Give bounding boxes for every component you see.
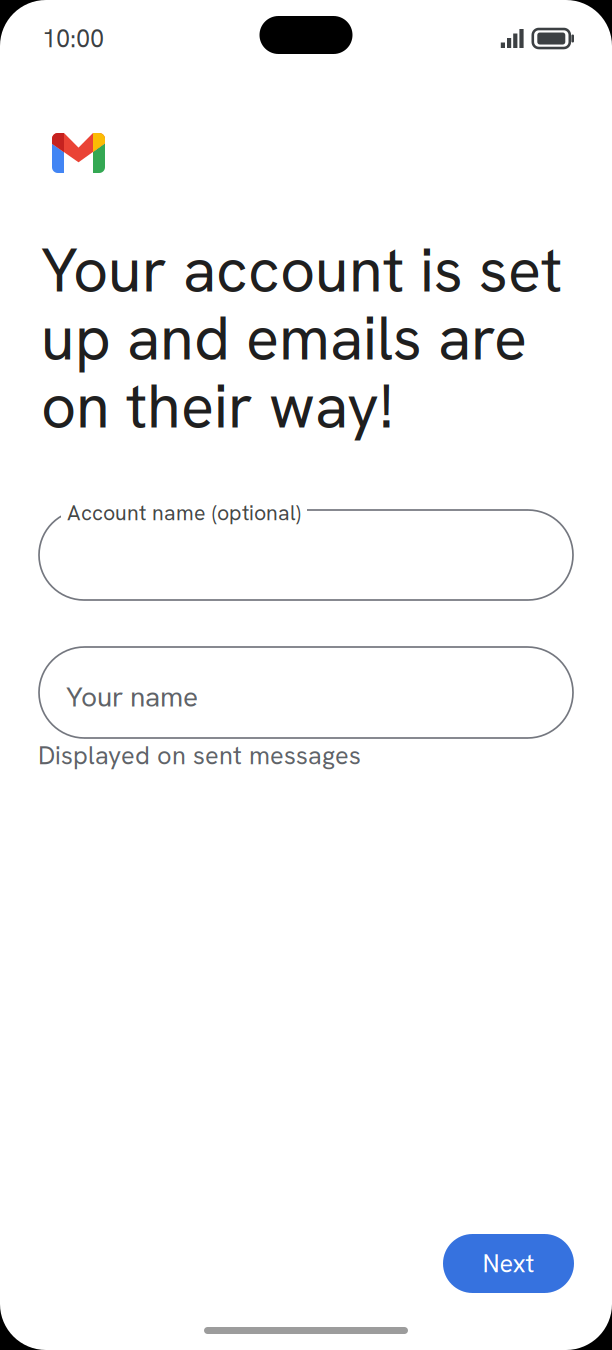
- staticText: Next: [482, 1247, 534, 1280]
- staticText: 10:00: [42, 22, 104, 55]
- staticText: Account name (optional): [67, 499, 301, 527]
- staticText: up and emails are: [41, 298, 527, 378]
- staticText: on their way!: [41, 366, 394, 446]
- button[interactable]: Account name (optional): [39, 510, 573, 600]
- button[interactable]: Your name: [39, 647, 573, 738]
- button[interactable]: Next: [443, 1234, 574, 1293]
- staticText: Your account is set: [41, 230, 562, 310]
- staticText: Your name: [66, 678, 198, 715]
- staticText: Displayed on sent messages: [38, 739, 361, 772]
